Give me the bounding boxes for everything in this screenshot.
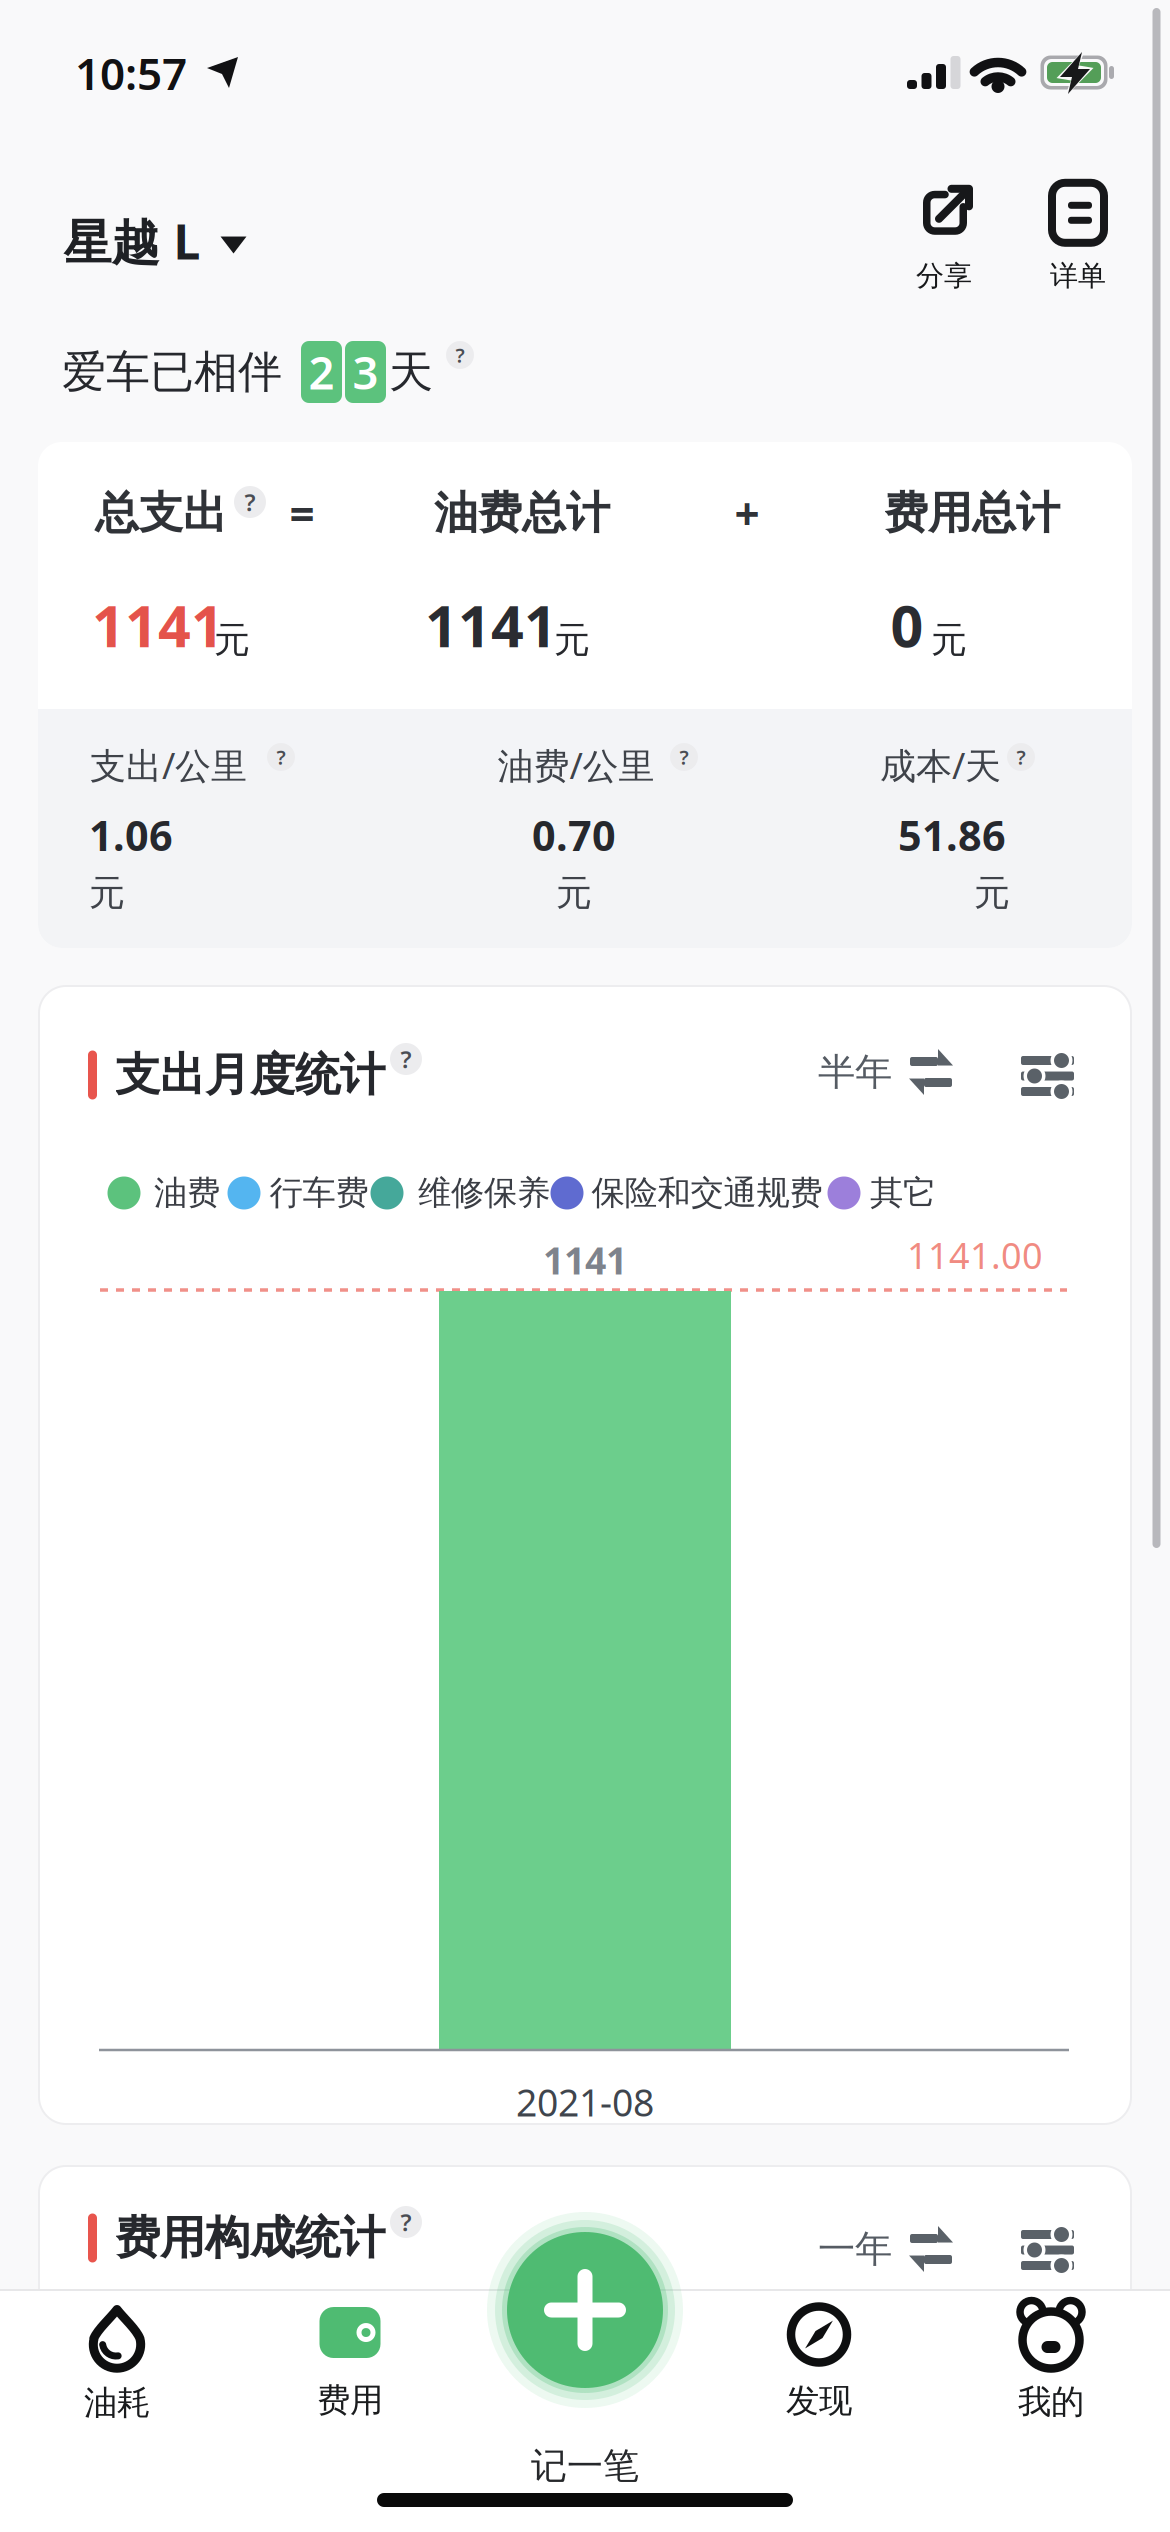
- staticText: 2021-08: [516, 2077, 654, 2127]
- button[interactable]: 半年: [818, 1049, 954, 1095]
- staticText: 1141: [92, 587, 224, 663]
- staticText: 元: [974, 871, 1010, 915]
- staticText: =: [289, 484, 314, 542]
- staticText: 发现: [786, 2380, 852, 2421]
- staticText: 总支出: [95, 486, 227, 540]
- staticText: 半年: [818, 1049, 892, 1095]
- staticText: 我的: [1018, 2381, 1084, 2422]
- staticText: 1141: [425, 587, 557, 663]
- staticText: 油费/公里: [497, 741, 654, 789]
- staticText: ?: [400, 2206, 411, 2238]
- button[interactable]: 费用: [317, 2307, 383, 2421]
- button[interactable]: [487, 2212, 683, 2408]
- staticText: 1141.00: [907, 1231, 1043, 1279]
- staticText: 元: [89, 871, 125, 915]
- staticText: 记一笔: [531, 2444, 639, 2488]
- staticText: 费用总计: [884, 486, 1060, 540]
- staticText: 元: [556, 871, 592, 915]
- staticText: ?: [679, 744, 688, 770]
- staticText: 3: [352, 342, 378, 402]
- staticText: 一年: [818, 2226, 892, 2272]
- staticText: ?: [244, 486, 255, 518]
- staticText: 详单: [1050, 259, 1106, 293]
- staticText: 元: [214, 618, 250, 662]
- button[interactable]: 分享: [915, 183, 973, 293]
- button[interactable]: 油耗: [84, 2304, 150, 2423]
- staticText: 0.70: [532, 808, 616, 862]
- staticText: ?: [455, 342, 464, 368]
- staticText: 爱车已相伴: [62, 345, 282, 399]
- staticText: 0: [890, 587, 923, 663]
- staticText: 成本/天: [880, 741, 1001, 789]
- staticText: 元: [554, 618, 590, 662]
- staticText: 2: [308, 342, 334, 402]
- staticText: 支出月度统计: [115, 1047, 385, 1103]
- staticText: 其它: [870, 1172, 936, 1213]
- button[interactable]: 我的: [1018, 2303, 1084, 2422]
- button[interactable]: 星越 L: [63, 209, 246, 273]
- staticText: 天: [389, 345, 433, 399]
- staticText: ?: [1016, 744, 1025, 770]
- staticText: 行车费: [269, 1172, 368, 1213]
- button[interactable]: 详单: [1050, 183, 1106, 293]
- staticText: +: [734, 484, 759, 542]
- staticText: 元: [931, 618, 967, 662]
- staticText: 油费总计: [434, 486, 610, 540]
- staticText: 10:57: [75, 44, 187, 102]
- staticText: 51.86: [898, 808, 1006, 862]
- staticText: 星越 L: [63, 209, 200, 273]
- staticText: 1141: [543, 1235, 627, 1285]
- staticText: 油费: [154, 1172, 220, 1213]
- staticText: 维修保养: [418, 1172, 550, 1213]
- button[interactable]: 一年: [818, 2226, 954, 2272]
- staticText: 分享: [916, 259, 972, 293]
- staticText: 费用构成统计: [115, 2210, 385, 2266]
- staticText: 费用: [317, 2380, 383, 2421]
- staticText: ?: [400, 1043, 411, 1075]
- staticText: 1.06: [89, 808, 173, 862]
- staticText: 保险和交通规费: [591, 1172, 822, 1213]
- staticText: ?: [276, 744, 285, 770]
- staticText: 支出/公里: [90, 741, 247, 789]
- button[interactable]: [1018, 2227, 1076, 2273]
- staticText: 油耗: [84, 2382, 150, 2423]
- button[interactable]: [1018, 1053, 1076, 1099]
- button[interactable]: 发现: [786, 2306, 852, 2421]
